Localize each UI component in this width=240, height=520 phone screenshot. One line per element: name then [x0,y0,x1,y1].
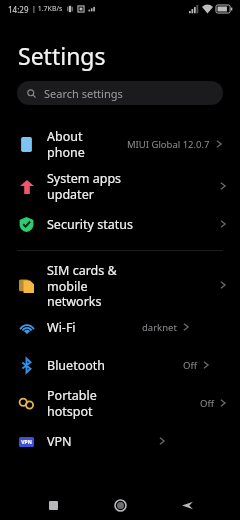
button[interactable]: SIM cards & mobile networks [0,262,240,308]
staticText: | 1.7KB/s [32,4,63,14]
staticText: Settings [18,40,106,71]
staticText: Search settings [44,86,123,101]
button[interactable]: About phone [0,121,240,167]
button[interactable]: Search settings [17,81,223,105]
staticText: darknet [142,321,177,334]
staticText: Bluetooth [47,357,106,374]
staticText: System apps updater [47,170,133,202]
button[interactable]: Wi-Fi [0,308,240,346]
staticText: VPN [47,433,72,450]
staticText: Off [183,359,197,372]
button[interactable]: VPN [0,422,240,460]
button[interactable]: Home [106,491,134,519]
staticText: Security status [47,216,133,233]
button[interactable]: Recent apps [39,491,67,519]
staticText: Off [200,397,214,410]
button[interactable]: Portable hotspot [0,384,240,422]
staticText: About phone [47,128,85,160]
staticText: MIUI Global 12.0.7 [127,138,210,151]
staticText: 14:29 [8,4,29,15]
staticText: Wi-Fi [47,319,76,336]
button[interactable]: System apps updater [0,167,240,205]
button[interactable]: Back [173,491,201,519]
staticText: SIM cards & mobile networks [47,262,133,308]
staticText: Portable hotspot [47,387,123,419]
button[interactable]: Bluetooth [0,346,240,384]
button[interactable]: Security status [0,205,240,243]
staticText: VPN [21,439,32,446]
